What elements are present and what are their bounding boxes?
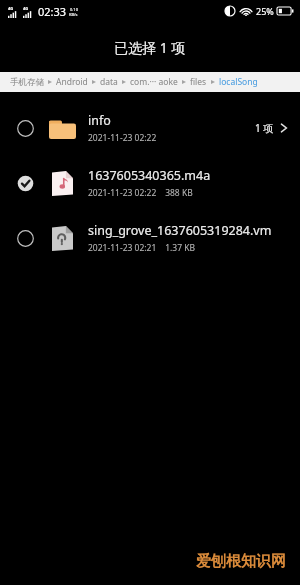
staticText: com.··· aoke bbox=[130, 76, 178, 88]
staticText: 2021-11-23 02:21 1.37 KB bbox=[88, 242, 196, 254]
button[interactable]: Not selected bbox=[12, 225, 38, 251]
staticText: data bbox=[100, 76, 118, 88]
button[interactable]: Not selected bbox=[0, 210, 300, 265]
staticText: 4G bbox=[8, 6, 14, 11]
staticText: 02:33 bbox=[38, 4, 67, 19]
staticText: 手机存储 bbox=[10, 77, 44, 88]
staticText: files bbox=[190, 76, 207, 88]
staticText: KB/s bbox=[69, 12, 78, 17]
staticText: 爱刨根知识网 bbox=[196, 552, 286, 571]
button[interactable]: Not selected bbox=[12, 115, 38, 141]
staticText: 1637605340365.m4a bbox=[88, 167, 211, 184]
button[interactable]: Not selected bbox=[0, 100, 300, 155]
staticText: 0.10 bbox=[70, 7, 78, 12]
button[interactable]: Selected bbox=[12, 170, 38, 196]
staticText: 2021-11-23 02:22 388 KB bbox=[88, 187, 193, 199]
button[interactable]: Selected bbox=[0, 155, 300, 210]
staticText: Android bbox=[56, 76, 88, 88]
other: Open folder bbox=[280, 122, 288, 134]
staticText: info bbox=[88, 112, 111, 129]
staticText: localSong bbox=[219, 76, 258, 88]
staticText: 1 项 bbox=[255, 121, 274, 135]
staticText: 2021-11-23 02:22 bbox=[88, 132, 157, 144]
staticText: 25% bbox=[256, 5, 274, 17]
staticText: 已选择 1 项 bbox=[114, 38, 186, 57]
staticText: sing_grove_1637605319284.vm bbox=[88, 222, 272, 239]
staticText: 4G bbox=[23, 6, 29, 11]
